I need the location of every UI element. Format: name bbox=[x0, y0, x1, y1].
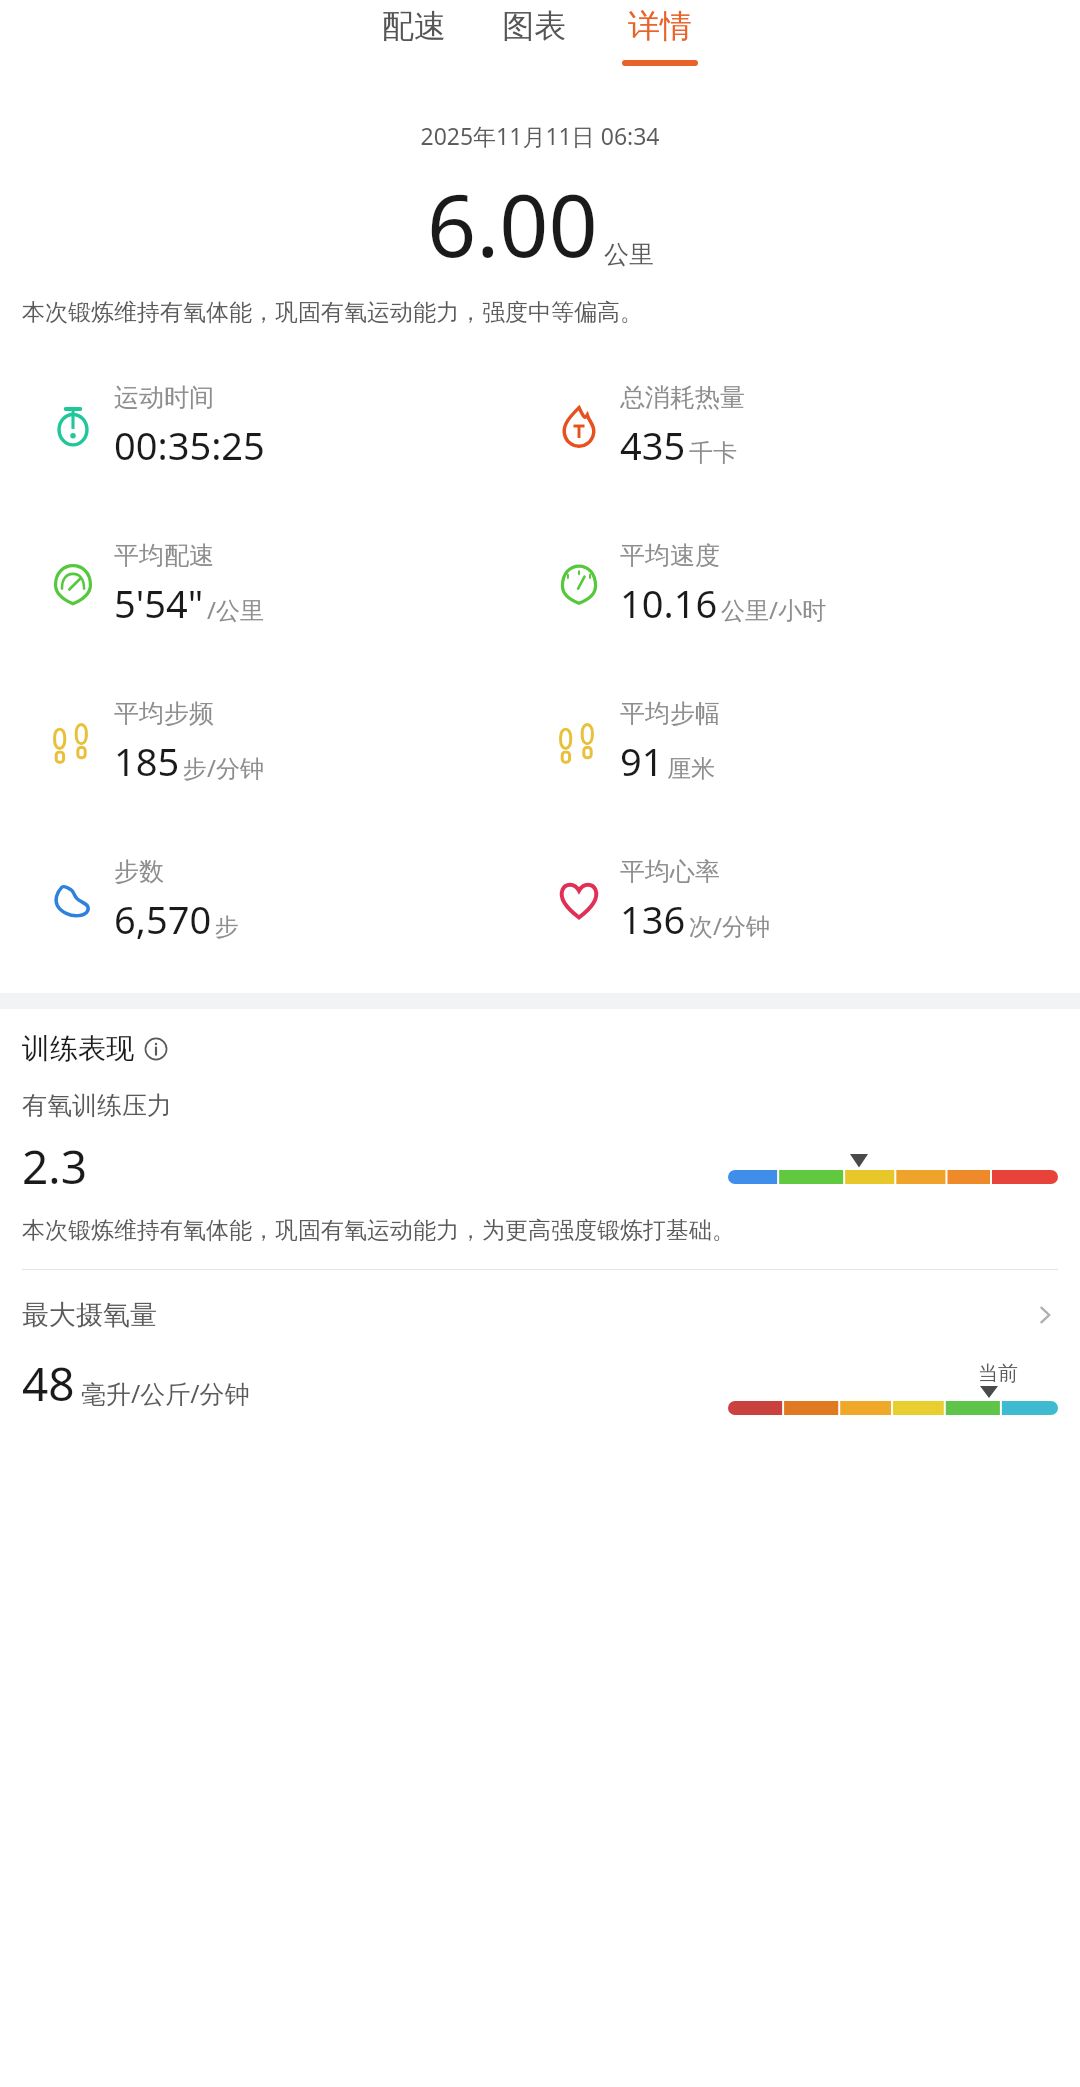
button[interactable]: 训练表现说明 bbox=[22, 1031, 1080, 1066]
other: 查看最大摄氧量 bbox=[1032, 1302, 1058, 1328]
button[interactable]: 平均配速 bbox=[50, 505, 540, 663]
staticText: 千卡 bbox=[689, 438, 737, 468]
staticText: 91 bbox=[620, 735, 664, 787]
button[interactable]: 平均心率 bbox=[556, 821, 1080, 979]
staticText: 总消耗热量 bbox=[620, 382, 745, 413]
staticText: 本次锻炼维持有氧体能，巩固有氧运动能力，强度中等偏高。 bbox=[22, 298, 1058, 327]
staticText: 步 bbox=[215, 912, 239, 942]
staticText: 有氧训练压力 bbox=[22, 1090, 172, 1121]
staticText: 48 bbox=[22, 1352, 75, 1415]
button[interactable]: 图表 bbox=[494, 0, 574, 66]
staticText: 6.00 bbox=[427, 165, 598, 282]
staticText: 毫升/公斤/分钟 bbox=[81, 1376, 250, 1410]
button[interactable]: 总消耗热量 bbox=[556, 347, 1080, 505]
staticText: 5'54" bbox=[114, 577, 204, 629]
staticText: 平均速度 bbox=[620, 540, 720, 571]
staticText: 配速 bbox=[382, 6, 446, 46]
staticText: 平均步幅 bbox=[620, 698, 720, 729]
staticText: 详情 bbox=[628, 6, 692, 46]
staticText: 公里/小时 bbox=[721, 593, 826, 626]
staticText: 平均心率 bbox=[620, 856, 720, 887]
staticText: 435 bbox=[620, 419, 686, 471]
staticText: 步/分钟 bbox=[183, 751, 264, 784]
staticText: 训练表现 bbox=[22, 1031, 134, 1066]
staticText: 平均配速 bbox=[114, 540, 214, 571]
staticText: /公里 bbox=[207, 593, 264, 626]
button[interactable]: 运动时间 bbox=[50, 347, 540, 505]
staticText: 公里 bbox=[604, 239, 654, 270]
staticText: 步数 bbox=[114, 856, 164, 887]
staticText: 185 bbox=[114, 735, 180, 787]
staticText: 最大摄氧量 bbox=[22, 1298, 157, 1332]
staticText: 00:35:25 bbox=[114, 419, 265, 471]
staticText: 厘米 bbox=[667, 754, 715, 784]
button[interactable]: 详情 bbox=[614, 0, 706, 72]
staticText: 次/分钟 bbox=[689, 909, 770, 942]
button[interactable]: 最大摄氧量 bbox=[0, 1298, 1080, 1332]
button[interactable]: 平均步幅 bbox=[556, 663, 1080, 821]
button[interactable]: 平均步频 bbox=[50, 663, 540, 821]
staticText: 136 bbox=[620, 893, 686, 945]
staticText: 运动时间 bbox=[114, 382, 214, 413]
staticText: 6,570 bbox=[114, 893, 212, 945]
staticText: 2025年11月11日 06:34 bbox=[0, 120, 1080, 151]
staticText: 平均步频 bbox=[114, 698, 214, 729]
staticText: 本次锻炼维持有氧体能，巩固有氧运动能力，为更高强度锻炼打基础。 bbox=[22, 1216, 1058, 1245]
button[interactable]: 配速 bbox=[374, 0, 454, 66]
staticText: 图表 bbox=[502, 6, 566, 46]
staticText: 当前 bbox=[978, 1361, 1018, 1386]
button[interactable]: 步数 bbox=[50, 821, 540, 979]
staticText: 10.16 bbox=[620, 577, 718, 629]
button[interactable]: 平均速度 bbox=[556, 505, 1080, 663]
staticText: 2.3 bbox=[22, 1135, 87, 1198]
